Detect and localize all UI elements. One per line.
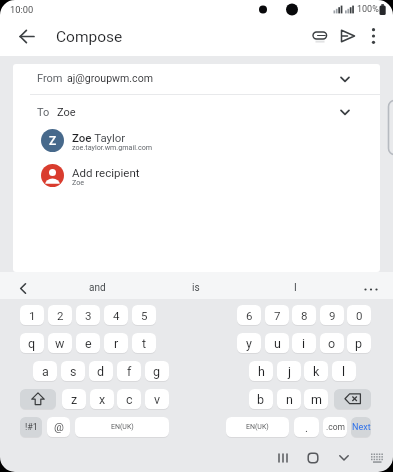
button[interactable]: @	[47, 417, 70, 437]
staticText: c	[126, 392, 133, 407]
button[interactable]	[338, 72, 352, 86]
button[interactable]: !#1	[20, 417, 42, 437]
staticText: a	[42, 364, 49, 379]
button[interactable]	[13, 158, 380, 193]
button[interactable]: o	[320, 333, 344, 353]
button[interactable]: 5	[132, 305, 156, 325]
button[interactable]	[14, 282, 34, 295]
staticText: Zoe	[57, 106, 76, 119]
button[interactable]: i	[292, 333, 316, 353]
staticText: 0	[356, 309, 363, 322]
button[interactable]: v	[145, 389, 169, 409]
button[interactable]: EN(UK)	[75, 417, 169, 437]
staticText: i	[302, 336, 306, 351]
button[interactable]: I	[265, 281, 325, 295]
button[interactable]: z	[62, 389, 86, 409]
button[interactable]	[338, 25, 360, 47]
staticText: .	[305, 421, 309, 434]
button[interactable]: x	[90, 389, 114, 409]
button[interactable]	[301, 446, 325, 470]
staticText: To	[37, 106, 50, 119]
button[interactable]: 6	[237, 305, 261, 325]
staticText: e	[85, 336, 92, 351]
staticText: Add recipient	[72, 166, 140, 179]
button[interactable]: d	[89, 361, 113, 381]
button[interactable]: m	[304, 389, 328, 409]
button[interactable]	[13, 95, 380, 123]
staticText: h	[258, 364, 265, 379]
button[interactable]	[308, 24, 332, 48]
button[interactable]: 0	[347, 305, 371, 325]
button[interactable]	[13, 64, 380, 94]
staticText: d	[97, 364, 105, 379]
staticText: .com	[326, 422, 345, 432]
staticText: q	[28, 336, 36, 351]
staticText: s	[70, 364, 77, 379]
staticText: Zoe Taylor	[72, 131, 126, 144]
staticText: o	[328, 336, 336, 351]
button[interactable]	[271, 446, 295, 470]
staticText: aj@groupwm.com	[67, 72, 153, 84]
button[interactable]: e	[76, 333, 100, 353]
staticText: w	[55, 336, 65, 351]
staticText: z	[71, 392, 78, 407]
button[interactable]	[13, 123, 380, 158]
staticText: EN(UK)	[111, 423, 134, 431]
button[interactable]: and	[67, 281, 127, 295]
staticText: 10:00	[10, 4, 34, 15]
staticText: t	[142, 336, 147, 351]
button[interactable]: .	[294, 417, 319, 437]
button[interactable]: 8	[292, 305, 316, 325]
button[interactable]: a	[33, 361, 57, 381]
staticText: and	[89, 282, 106, 294]
button[interactable]: 3	[76, 305, 100, 325]
staticText: n	[286, 392, 293, 407]
button[interactable]: r	[104, 333, 128, 353]
staticText: 3	[85, 309, 92, 322]
button[interactable]: .com	[323, 417, 347, 437]
staticText: From	[37, 72, 63, 85]
button[interactable]: 2	[48, 305, 72, 325]
button[interactable]: y	[237, 333, 261, 353]
staticText: m	[311, 392, 322, 407]
button[interactable]: s	[61, 361, 85, 381]
button[interactable]: u	[265, 333, 289, 353]
staticText: !#1	[25, 422, 38, 433]
button[interactable]: n	[277, 389, 301, 409]
staticText: r	[114, 336, 119, 351]
button[interactable]	[338, 105, 352, 119]
button[interactable]: l	[332, 361, 356, 381]
button[interactable]: p	[347, 333, 371, 353]
button[interactable]: 9	[320, 305, 344, 325]
button[interactable]: Next	[351, 417, 371, 437]
staticText: 9	[329, 309, 336, 322]
button[interactable]: j	[277, 361, 301, 381]
button[interactable]	[20, 389, 56, 409]
button[interactable]: is	[166, 281, 226, 295]
button[interactable]: b	[249, 389, 273, 409]
button[interactable]: g	[145, 361, 169, 381]
staticText: u	[274, 336, 281, 351]
staticText: Next	[352, 422, 371, 433]
button[interactable]	[364, 446, 388, 470]
button[interactable]: c	[117, 389, 141, 409]
button[interactable]	[360, 283, 382, 295]
button[interactable]: EN(UK)	[226, 417, 289, 437]
button[interactable]	[364, 25, 383, 47]
button[interactable]: q	[20, 333, 44, 353]
button[interactable]: k	[304, 361, 328, 381]
staticText: Compose	[56, 28, 123, 46]
button[interactable]: h	[249, 361, 273, 381]
button[interactable]: 4	[104, 305, 128, 325]
button[interactable]: 1	[20, 305, 44, 325]
button[interactable]: f	[117, 361, 141, 381]
staticText: @	[54, 421, 64, 434]
button[interactable]	[334, 389, 371, 409]
button[interactable]: t	[132, 333, 156, 353]
button[interactable]: 7	[265, 305, 289, 325]
staticText: g	[153, 364, 161, 379]
button[interactable]	[15, 25, 39, 49]
button[interactable]	[332, 446, 356, 470]
button[interactable]: w	[48, 333, 72, 353]
staticText: y	[246, 336, 252, 351]
